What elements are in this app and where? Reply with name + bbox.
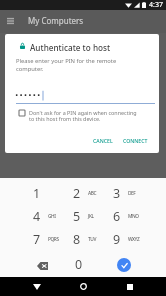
button[interactable]: 4 [17,205,57,228]
staticText: DEF [128,190,136,197]
button[interactable]: Recent apps [120,277,139,296]
staticText: 8 [73,231,81,248]
button[interactable]: Back [27,277,46,296]
staticText: Don't ask for a PIN again when connectin… [29,109,140,123]
button[interactable]: 8 [57,228,97,251]
button[interactable]: 0 [59,253,99,276]
button[interactable]: Navigation menu [2,12,19,29]
staticText: Authenticate to host [30,42,111,53]
button[interactable]: Enter [104,253,144,276]
staticText: 7 [33,231,41,248]
button[interactable]: 3 [97,182,137,205]
staticText: CANCEL [93,137,113,144]
staticText: GHI [48,213,56,220]
button[interactable]: 5 [57,205,97,228]
staticText: 1 [33,185,41,202]
staticText: 9 [113,231,121,248]
staticText: WXYZ [128,236,140,243]
button[interactable]: Don't ask for a PIN again [19,110,25,116]
staticText: TUV [88,236,96,243]
staticText: 0 [75,256,83,273]
button[interactable]: 7 [17,228,57,251]
button[interactable]: 9 [97,228,137,251]
staticText: CONNECT [123,137,148,144]
button[interactable]: CONNECT [118,133,153,148]
staticText: ABC [88,190,97,197]
button[interactable]: 1 [17,182,57,205]
staticText: MNO [128,213,139,220]
button[interactable]: CANCEL [88,133,118,148]
button[interactable]: Backspace [22,254,62,277]
staticText: 5 [73,208,81,225]
staticText: 2 [73,185,81,202]
button[interactable]: 2 [57,182,97,205]
staticText: 4 [33,208,41,225]
staticText: PQRS [48,236,59,243]
button[interactable]: 6 [97,205,137,228]
button[interactable]: Home [74,277,93,296]
staticText: 6 [113,208,121,225]
staticText: JKL [88,213,94,220]
staticText: 4:37 [149,0,163,10]
staticText: My Computers [28,15,84,26]
staticText: 3 [113,185,121,202]
staticText: Please enter your PIN for the remote com… [16,57,118,73]
